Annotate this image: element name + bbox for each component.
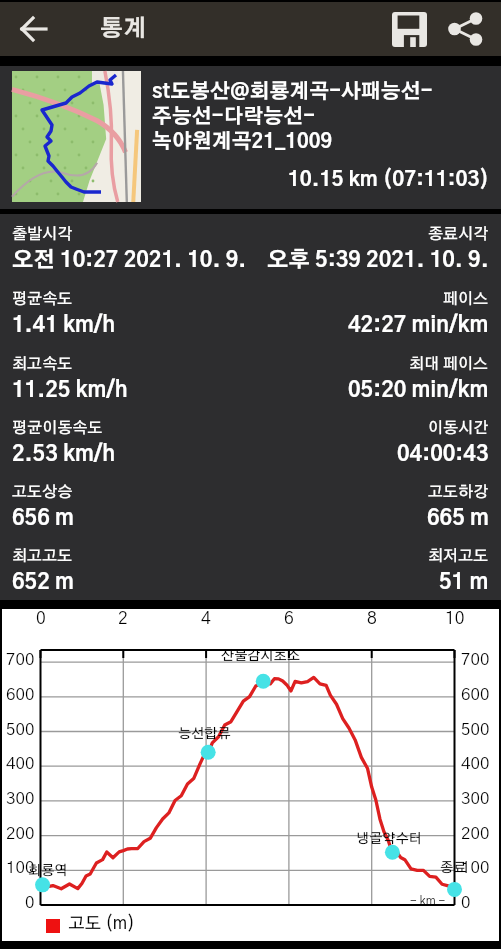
staticText: 500	[6, 721, 35, 738]
button[interactable]: 고도상승	[12, 472, 489, 536]
button[interactable]: 출발시각	[12, 214, 489, 279]
staticText: st도봉산@회룡계곡-사패능선-	[152, 82, 433, 102]
staticText: 6	[284, 610, 294, 628]
staticText: 종료시각	[428, 227, 489, 243]
staticText: 300	[461, 790, 490, 807]
staticText: 0	[461, 894, 471, 911]
staticText: 통계	[100, 18, 146, 41]
staticText: 최저고도	[428, 549, 489, 565]
staticText: 400	[6, 755, 35, 772]
staticText: 200	[461, 825, 490, 842]
staticText: 600	[461, 686, 490, 703]
button[interactable]	[437, 2, 493, 56]
staticText: 05:20 min/km	[348, 380, 489, 402]
staticText: 고도상승	[12, 485, 73, 501]
staticText: 4	[201, 610, 211, 628]
staticText: 냉골약수터	[356, 832, 422, 846]
staticText: 11.25 km/h	[12, 380, 128, 402]
staticText: 회룡역	[28, 864, 68, 878]
staticText: 700	[461, 651, 490, 668]
staticText: 최대 페이스	[409, 357, 489, 373]
staticText: 0	[36, 610, 46, 628]
staticText: 0	[25, 894, 35, 911]
staticText: 능선합류	[178, 727, 231, 741]
staticText: 녹야원계곡21_1009	[152, 132, 333, 152]
staticText: 평균속도	[12, 292, 73, 308]
staticText: 10	[445, 610, 465, 628]
staticText: 600	[6, 686, 35, 703]
staticText: 출발시각	[12, 227, 73, 243]
staticText: 최고고도	[12, 549, 73, 565]
staticText: 656 m	[12, 508, 74, 530]
button[interactable]	[381, 2, 437, 56]
staticText: 8	[367, 610, 377, 628]
staticText: 페이스	[443, 292, 489, 308]
staticText: 2	[118, 610, 128, 628]
staticText: 평균이동속도	[12, 421, 103, 437]
staticText: 652 m	[12, 572, 74, 594]
button[interactable]	[12, 2, 56, 56]
staticText: 51 m	[439, 572, 489, 594]
staticText: 고도하강	[428, 485, 489, 501]
button[interactable]: 평균이동속도	[12, 408, 489, 472]
staticText: 종료	[440, 861, 467, 875]
staticText: 1.41 km/h	[12, 315, 115, 337]
staticText: 최고속도	[12, 357, 73, 373]
staticText: 300	[6, 790, 35, 807]
button[interactable]: st도봉산@회룡계곡-사패능선-	[0, 66, 501, 209]
staticText: 500	[461, 721, 490, 738]
staticText: 400	[461, 755, 490, 772]
staticText: 고도 (m)	[68, 915, 135, 932]
staticText: 200	[6, 825, 35, 842]
staticText: 2.53 km/h	[12, 444, 115, 466]
staticText: 100	[461, 859, 490, 876]
staticText: 산불감시초소	[221, 649, 300, 663]
staticText: 42:27 min/km	[348, 315, 489, 337]
staticText: 오전 10:27 2021. 10. 9.	[12, 250, 247, 272]
staticText: 665 m	[427, 508, 489, 530]
staticText: 10.15 km (07:11:03)	[152, 170, 489, 191]
button[interactable]: 평균속도	[12, 279, 489, 344]
staticText: 오후 5:39 2021. 10. 9.	[267, 250, 489, 272]
staticText: 이동시간	[428, 421, 489, 437]
button[interactable]: 최고속도	[12, 344, 489, 408]
staticText: 04:00:43	[397, 444, 489, 466]
staticText: 700	[6, 651, 35, 668]
staticText: 주능선-다락능선-	[152, 107, 315, 127]
staticText: - km -	[410, 895, 446, 907]
button[interactable]: 최고고도	[12, 536, 489, 600]
staticText: 100	[6, 859, 35, 876]
